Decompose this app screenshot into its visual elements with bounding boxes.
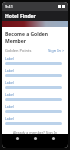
- staticText: Label: [5, 116, 14, 121]
- staticText: Label: [5, 56, 14, 61]
- staticText: 9:41: [5, 4, 13, 9]
- staticText: Become a Golden Member: [5, 31, 65, 45]
- staticText: Label: [5, 104, 14, 109]
- button[interactable]: Label: [5, 56, 65, 68]
- staticText: Label: [5, 80, 14, 85]
- button[interactable]: Label: [5, 80, 65, 92]
- staticText: Label: [5, 68, 14, 73]
- button[interactable]: Label: [5, 116, 65, 128]
- button[interactable]: Label: [5, 104, 65, 116]
- staticText: Hotel Finder: [5, 13, 36, 20]
- button[interactable]: Back: [14, 135, 20, 141]
- staticText: Golden Points: [5, 48, 32, 53]
- staticText: Label: [5, 92, 14, 97]
- button[interactable]: Home: [32, 135, 38, 141]
- button[interactable]: Label: [5, 68, 65, 80]
- button[interactable]: Recents: [50, 135, 56, 141]
- button[interactable]: Label: [5, 92, 65, 104]
- button[interactable]: Already a member? Sign In: [5, 130, 65, 134]
- button[interactable]: Sign In >: [48, 48, 65, 53]
